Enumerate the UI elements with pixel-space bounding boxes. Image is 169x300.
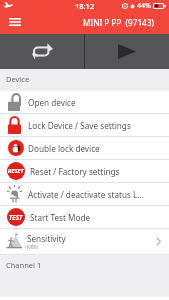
button[interactable]: Double lock device — [0, 137, 169, 159]
staticText: Start Test Mode — [30, 212, 91, 223]
button[interactable]: Open device — [0, 91, 169, 113]
button[interactable]: Sensitivity — [0, 229, 169, 254]
staticText: Activate / deactivate status L... — [28, 189, 144, 200]
staticText: Device — [6, 74, 30, 84]
staticText: MINI P PP (97143) — [83, 17, 154, 28]
staticText: 18:12 — [75, 1, 95, 11]
button[interactable]: Open navigation menu — [0, 12, 30, 34]
staticText: TEST — [9, 213, 23, 221]
button[interactable]: TEST — [0, 206, 169, 228]
staticText: Double lock device — [28, 143, 100, 154]
button[interactable]: RESET — [0, 160, 169, 182]
button[interactable]: Repeat — [0, 34, 84, 69]
staticText: Channel 1 — [6, 260, 42, 270]
staticText: Sensitivity — [27, 233, 66, 244]
button[interactable]: Play — [85, 34, 169, 69]
staticText: MIN — [27, 243, 39, 250]
button[interactable]: Activate / deactivate status L... — [0, 183, 169, 205]
staticText: Reset / Factory settings — [30, 166, 120, 177]
staticText: Lock Device / Save settings — [28, 120, 131, 131]
button[interactable]: Lock Device / Save settings — [0, 114, 169, 136]
staticText: 44% — [137, 1, 151, 11]
staticText: Open device — [28, 97, 76, 108]
staticText: RESET — [8, 167, 24, 175]
